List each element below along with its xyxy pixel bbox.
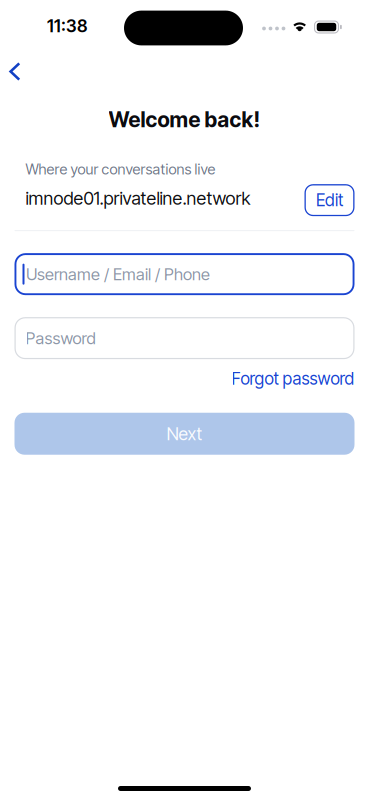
staticText: Next	[166, 423, 202, 444]
staticText: Forgot password	[231, 368, 354, 389]
staticText: Username / Email / Phone	[26, 264, 210, 284]
staticText: Where your conversations live	[25, 160, 215, 178]
staticText: imnode01.privateline.network	[25, 187, 250, 209]
staticText: Password	[25, 328, 95, 348]
staticText: 11:38	[47, 16, 87, 36]
staticText: Edit	[316, 190, 343, 210]
staticText: Welcome back!	[108, 107, 260, 132]
